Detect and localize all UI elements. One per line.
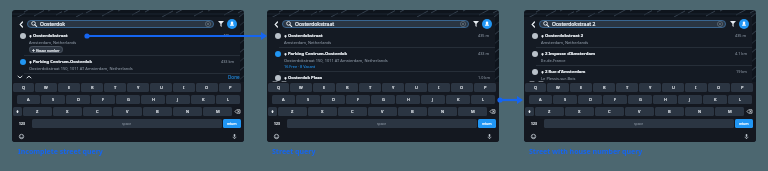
button[interactable]: Voice input [485, 132, 494, 141]
button[interactable]: C [83, 107, 112, 116]
button[interactable]: 2 Rue d'Amsterdam [524, 66, 752, 82]
button[interactable]: M [715, 107, 744, 116]
button[interactable]: C [595, 107, 624, 116]
button[interactable]: S [296, 95, 320, 104]
button[interactable]: G [628, 95, 652, 104]
button[interactable]: B [143, 107, 172, 116]
button[interactable]: Next field [16, 74, 24, 80]
button[interactable]: Emoji [529, 132, 538, 141]
button[interactable]: V [368, 107, 397, 116]
button[interactable]: M [203, 107, 232, 116]
button[interactable]: Y [639, 83, 661, 92]
button[interactable]: F [346, 95, 370, 104]
button[interactable]: House number [29, 46, 63, 53]
button[interactable]: Backspace [488, 107, 496, 116]
button[interactable]: Previous field [25, 74, 33, 80]
button[interactable]: L [471, 95, 495, 104]
button[interactable]: W [290, 83, 312, 92]
button[interactable]: I [428, 83, 450, 92]
button[interactable]: Z [278, 107, 307, 116]
button[interactable]: space [32, 119, 222, 128]
button[interactable]: V [113, 107, 142, 116]
button[interactable]: space [544, 119, 734, 128]
button[interactable]: Z [23, 107, 52, 116]
button[interactable]: Numbers [13, 119, 31, 128]
button[interactable]: Filter [729, 20, 737, 28]
button[interactable]: F [91, 95, 115, 104]
button[interactable]: L [216, 95, 240, 104]
button[interactable]: Shift [13, 107, 22, 116]
button[interactable]: Q [268, 83, 289, 92]
button[interactable]: Profile [482, 19, 492, 29]
button[interactable]: D [66, 95, 90, 104]
button[interactable]: Filter [472, 20, 480, 28]
button[interactable]: L [728, 95, 752, 104]
button[interactable]: Shift [268, 107, 277, 116]
button[interactable]: W [35, 83, 57, 92]
button[interactable]: Oosterdok Plaza [267, 72, 495, 82]
button[interactable]: N [428, 107, 457, 116]
button[interactable]: B [398, 107, 427, 116]
button[interactable]: Parking Centrum-Oosterdok [267, 48, 495, 72]
button[interactable]: I [173, 83, 195, 92]
button[interactable]: U [405, 83, 427, 92]
button[interactable]: Emoji [17, 132, 26, 141]
button[interactable]: G [371, 95, 395, 104]
button[interactable]: T [104, 83, 126, 92]
button[interactable]: Numbers [268, 119, 286, 128]
button[interactable]: H [396, 95, 420, 104]
button[interactable]: J [421, 95, 445, 104]
button[interactable]: R [336, 83, 358, 92]
button[interactable]: X [53, 107, 82, 116]
button[interactable]: K [703, 95, 727, 104]
button[interactable]: Backspace [233, 107, 241, 116]
button[interactable]: Q [13, 83, 34, 92]
button[interactable]: Back [272, 20, 280, 28]
button[interactable]: E [313, 83, 335, 92]
button[interactable]: Profile [739, 19, 749, 29]
button[interactable]: F [603, 95, 627, 104]
button[interactable]: P [474, 83, 496, 92]
button[interactable]: Oosterdokstraat [12, 30, 240, 56]
button[interactable]: Numbers [525, 119, 543, 128]
button[interactable]: J [678, 95, 702, 104]
button[interactable]: X [308, 107, 337, 116]
button[interactable]: Oosterdokstraat [286, 20, 466, 28]
button[interactable]: Emoji [272, 132, 281, 141]
button[interactable]: Voice input [742, 132, 751, 141]
button[interactable]: Oosterdokstraat 2 [524, 30, 752, 48]
button[interactable]: V [625, 107, 654, 116]
button[interactable]: space [287, 119, 477, 128]
button[interactable]: E [570, 83, 592, 92]
button[interactable]: Filter [217, 20, 225, 28]
button[interactable]: X [565, 107, 594, 116]
button[interactable]: Profile [227, 19, 237, 29]
button[interactable]: T [359, 83, 381, 92]
button[interactable]: O [196, 83, 218, 92]
button[interactable]: 2 Impasse d'Amsterdam [524, 48, 752, 66]
button[interactable]: D [578, 95, 602, 104]
button[interactable]: H [653, 95, 677, 104]
button[interactable]: Z [535, 107, 564, 116]
button[interactable]: D [321, 95, 345, 104]
button[interactable]: K [446, 95, 470, 104]
button[interactable]: U [150, 83, 172, 92]
button[interactable]: E [58, 83, 80, 92]
button[interactable]: Backspace [745, 107, 753, 116]
button[interactable]: Back [529, 20, 537, 28]
button[interactable]: Oosterdok [31, 20, 211, 28]
button[interactable]: O [451, 83, 473, 92]
button[interactable]: N [173, 107, 202, 116]
button[interactable]: R [593, 83, 615, 92]
button[interactable]: B [655, 107, 684, 116]
button[interactable]: G [116, 95, 140, 104]
button[interactable]: P [731, 83, 753, 92]
button[interactable]: S [553, 95, 577, 104]
button[interactable]: U [662, 83, 684, 92]
button[interactable]: W [547, 83, 569, 92]
button[interactable]: Y [127, 83, 149, 92]
button[interactable]: O [708, 83, 730, 92]
button[interactable]: J [166, 95, 190, 104]
button[interactable]: Oosterdokstraat 2 [543, 20, 723, 28]
button[interactable]: Y [382, 83, 404, 92]
